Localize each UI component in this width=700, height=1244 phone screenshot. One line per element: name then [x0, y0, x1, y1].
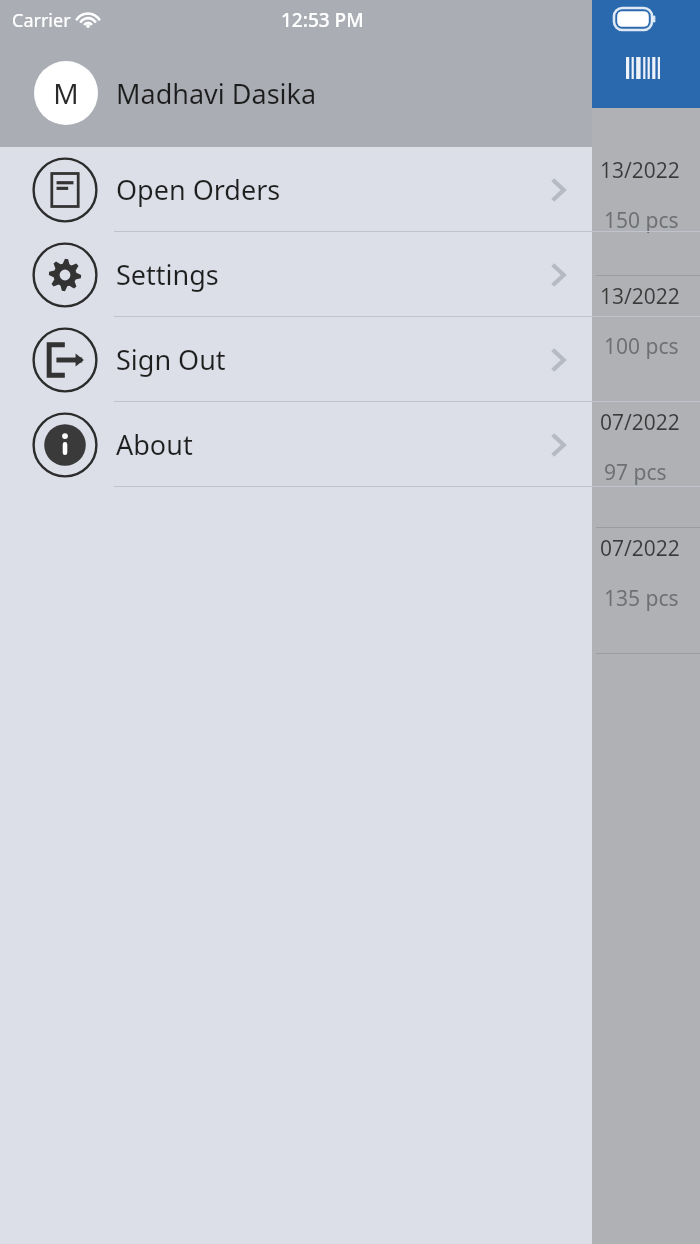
button[interactable]: 13/2022 [0, 150, 700, 276]
button[interactable]: About [0, 402, 592, 487]
button[interactable]: Carrier [0, 0, 592, 147]
staticText: 150 pcs [604, 206, 679, 235]
staticText: 07/2022 [600, 408, 680, 437]
button[interactable]: Scan barcode [622, 55, 664, 81]
staticText: Madhavi Dasika [116, 75, 317, 112]
staticText: Sign Out [116, 341, 226, 378]
staticText: Open Orders [116, 171, 281, 208]
staticText: M [53, 74, 79, 112]
button[interactable]: Settings [0, 232, 592, 317]
button[interactable]: Open Orders [0, 147, 592, 232]
staticText: 97 pcs [604, 458, 667, 487]
staticText: 12:53 PM [281, 7, 364, 33]
staticText: 13/2022 [600, 282, 680, 311]
staticText: Carrier [12, 8, 71, 33]
button[interactable]: 07/2022 [0, 402, 700, 528]
staticText: 100 pcs [604, 332, 679, 361]
staticText: Settings [116, 256, 219, 293]
button[interactable]: Sign Out [0, 317, 592, 402]
staticText: About [116, 426, 193, 463]
button[interactable]: 07/2022 [0, 528, 700, 654]
button[interactable]: 13/2022 [0, 276, 700, 402]
staticText: 13/2022 [600, 156, 680, 185]
staticText: 135 pcs [604, 584, 679, 613]
staticText: 07/2022 [600, 534, 680, 563]
